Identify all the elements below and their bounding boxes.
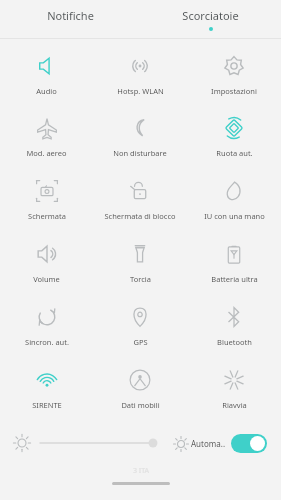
staticText: Sincron. aut.	[25, 337, 69, 347]
staticText: Audio	[36, 86, 57, 96]
button[interactable]: Impostazioni	[187, 43, 281, 105]
staticText: Riavvia	[222, 400, 247, 410]
button[interactable]	[40, 432, 162, 454]
staticText: Schermata	[28, 211, 66, 221]
staticText: IU con una mano	[204, 211, 265, 221]
button[interactable]: SIRENTE	[0, 357, 93, 420]
staticText: Ruota aut.	[216, 148, 253, 158]
button[interactable]: Mod. aereo	[0, 105, 93, 168]
staticText: Schermata di blocco	[104, 211, 176, 221]
button[interactable]: Torcia	[93, 231, 187, 294]
button[interactable]: Schermata di blocco	[93, 168, 187, 231]
staticText: Mod. aereo	[26, 148, 67, 158]
button[interactable]: Notifiche	[0, 0, 140, 38]
button[interactable]: Automa..	[174, 434, 267, 453]
staticText: Hotsp. WLAN	[117, 86, 164, 96]
staticText: Volume	[33, 274, 60, 284]
staticText: Dati mobili	[121, 400, 160, 410]
button[interactable]: Riavvia	[187, 357, 281, 420]
button[interactable]: Luminosità automatica	[231, 434, 267, 453]
staticText: Impostazioni	[211, 86, 257, 96]
button[interactable]: Ruota aut.	[187, 105, 281, 168]
button[interactable]: Bluetooth	[187, 294, 281, 357]
staticText: SIRENTE	[32, 400, 62, 410]
staticText: Torcia	[130, 274, 151, 284]
button[interactable]: Audio	[0, 43, 93, 105]
button[interactable]: Volume	[0, 231, 93, 294]
button[interactable]: GPS	[93, 294, 187, 357]
button[interactable]: IU con una mano	[187, 168, 281, 231]
staticText: GPS	[133, 337, 148, 347]
staticText: Scorciatoie	[182, 8, 239, 23]
button[interactable]: Hotsp. WLAN	[93, 43, 187, 105]
button[interactable]: Non disturbare	[93, 105, 187, 168]
staticText: Notifiche	[47, 8, 94, 23]
staticText: Bluetooth	[217, 337, 252, 347]
staticText: Automa..	[191, 438, 226, 449]
staticText: 3 ITA	[133, 466, 150, 476]
staticText: Non disturbare	[113, 148, 167, 158]
button[interactable]: Schermata	[0, 168, 93, 231]
button[interactable]: Scorciatoie	[140, 0, 281, 38]
staticText: Batteria ultra	[211, 274, 258, 284]
button[interactable]: Dati mobili	[93, 357, 187, 420]
button[interactable]: Batteria ultra	[187, 231, 281, 294]
button[interactable]: Sincron. aut.	[0, 294, 93, 357]
